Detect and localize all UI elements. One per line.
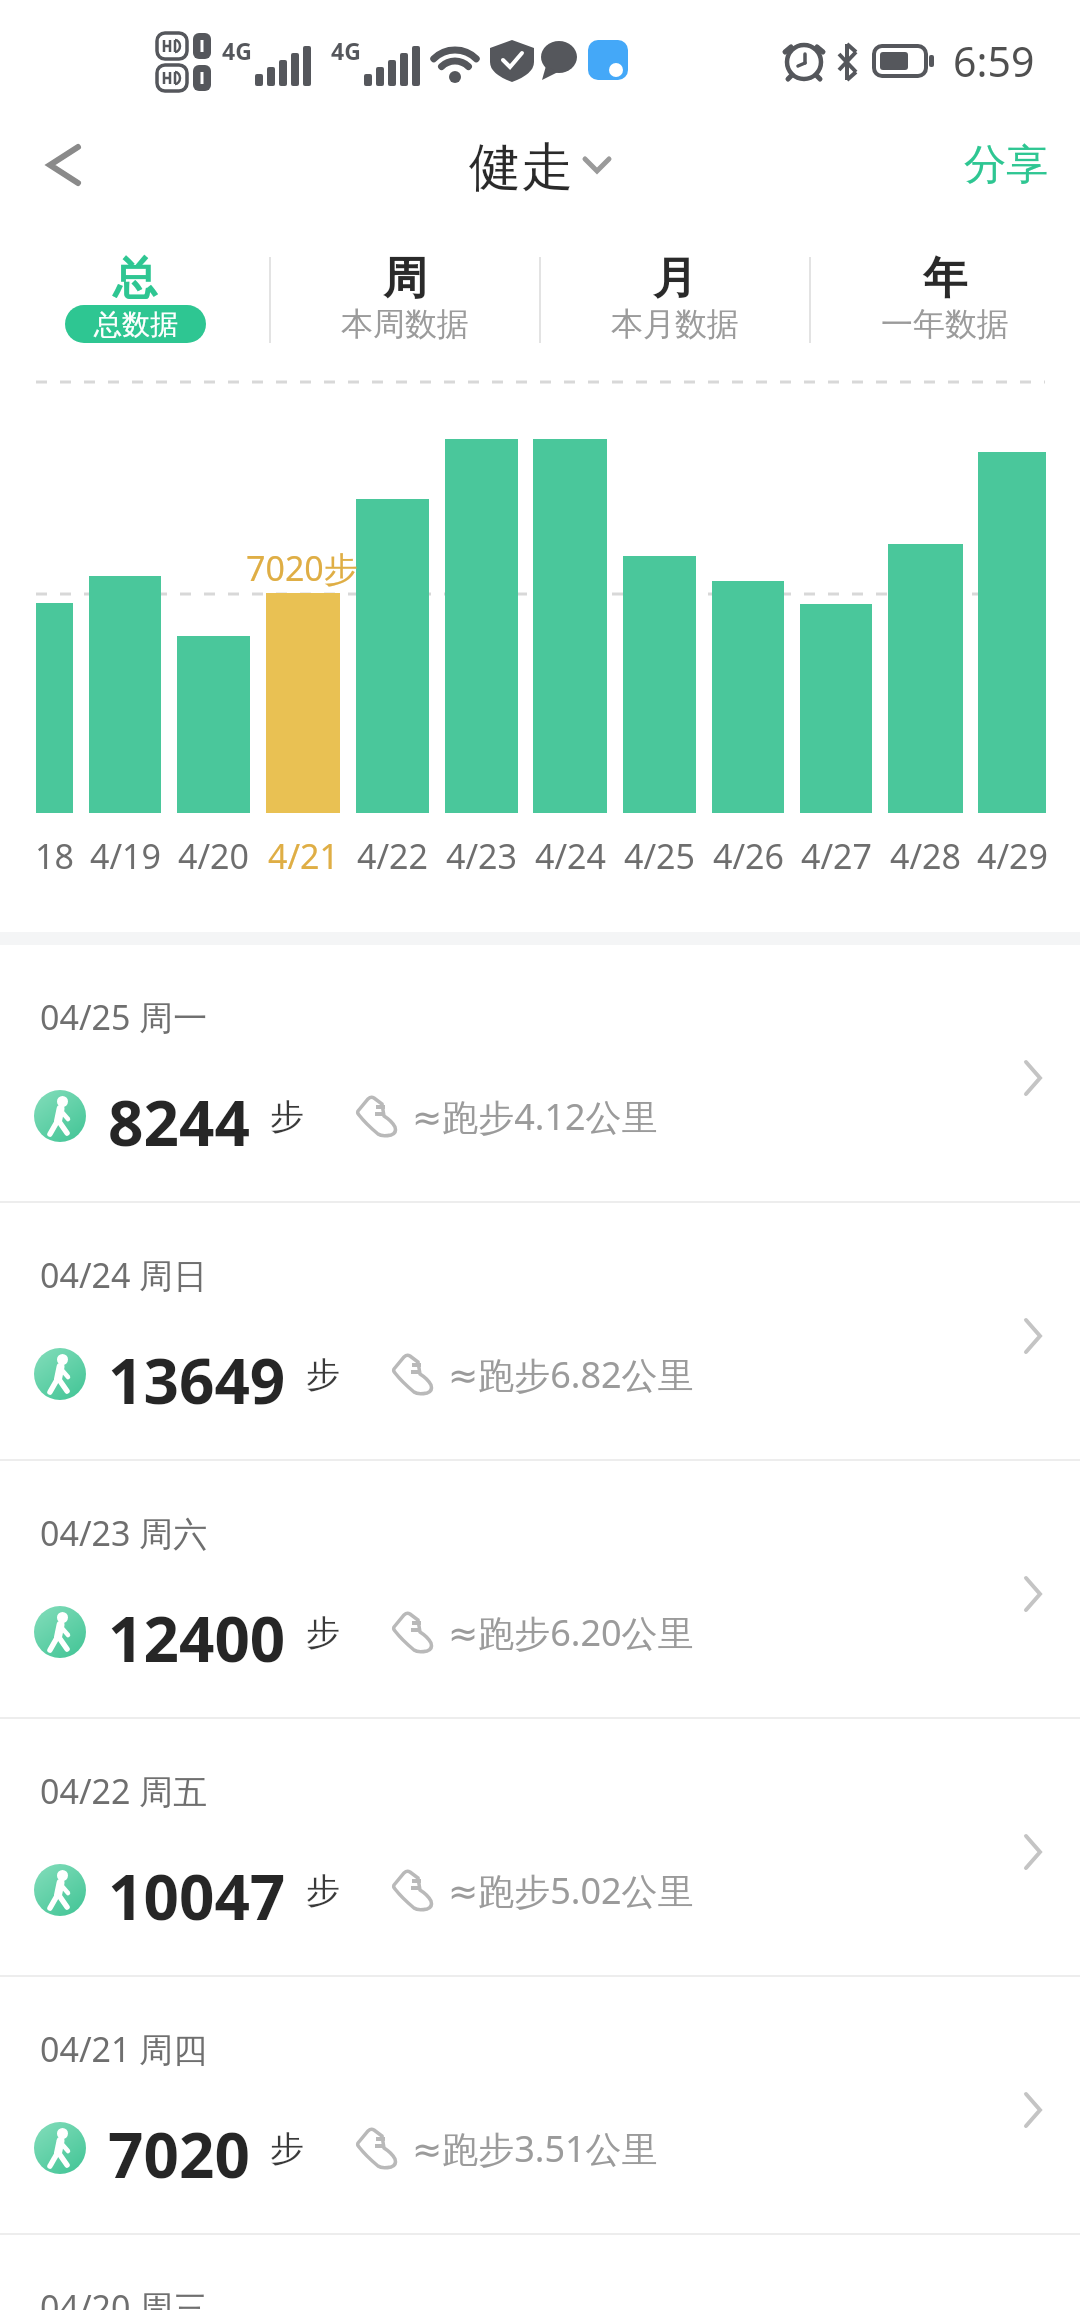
staticText: 04/24 周日 <box>40 1252 208 1298</box>
staticText: 12400 <box>108 1596 286 1668</box>
button[interactable]: 04/20 周三 <box>0 2235 1080 2310</box>
button[interactable] <box>810 240 1080 358</box>
staticText: 4/28 <box>890 833 961 879</box>
staticText: 4/20 <box>178 833 249 879</box>
staticText: 步 <box>270 1095 304 1138</box>
button[interactable] <box>270 240 540 358</box>
button[interactable]: 04/23 周六 <box>0 1461 1080 1719</box>
button[interactable] <box>540 240 810 358</box>
staticText: 04/22 周五 <box>40 1768 208 1814</box>
staticText: ≈跑步4.12公里 <box>412 1092 658 1141</box>
staticText: 13649 <box>108 1338 286 1410</box>
button[interactable]: 04/24 周日 <box>0 1203 1080 1461</box>
staticText: 一年数据 <box>881 304 1009 344</box>
staticText: ≈跑步6.20公里 <box>448 1608 694 1657</box>
staticText: 本周数据 <box>341 304 469 344</box>
staticText: 04/20 周三 <box>40 2284 208 2310</box>
staticText: 7020步 <box>246 545 358 591</box>
staticText: 本月数据 <box>611 304 739 344</box>
staticText: 总数据 <box>94 307 178 342</box>
staticText: 4/26 <box>713 833 784 879</box>
button[interactable]: 分享 <box>940 135 1060 195</box>
staticText: 6:59 <box>953 33 1035 89</box>
staticText: 18 <box>35 833 74 879</box>
staticText: 4/23 <box>446 833 517 879</box>
staticText: 4G <box>222 35 252 66</box>
staticText: ≈跑步3.51公里 <box>412 2124 658 2173</box>
button[interactable]: 04/25 周一 <box>0 945 1080 1203</box>
staticText: ≈跑步6.82公里 <box>448 1350 694 1399</box>
staticText: 4/25 <box>624 833 695 879</box>
staticText: 4G <box>331 35 361 66</box>
staticText: 04/23 周六 <box>40 1510 208 1556</box>
staticText: 4/27 <box>801 833 872 879</box>
staticText: 步 <box>306 1353 340 1396</box>
staticText: 年 <box>923 251 967 306</box>
staticText: 周 <box>383 251 427 306</box>
staticText: ≈跑步5.02公里 <box>448 1866 694 1915</box>
staticText: 10047 <box>108 1854 286 1926</box>
staticText: 总 <box>113 251 157 306</box>
staticText: 步 <box>270 2127 304 2170</box>
staticText: 步 <box>306 1869 340 1912</box>
staticText: 4/21 <box>268 833 339 879</box>
staticText: 04/21 周四 <box>40 2026 208 2072</box>
button[interactable] <box>0 240 270 358</box>
staticText: 4/22 <box>357 833 428 879</box>
button[interactable]: 04/21 周四 <box>0 1977 1080 2235</box>
staticText: 健走 <box>469 135 573 195</box>
button[interactable] <box>30 135 90 195</box>
staticText: 步 <box>306 1611 340 1654</box>
staticText: 4/29 <box>977 833 1048 879</box>
staticText: 4/19 <box>90 833 161 879</box>
button[interactable]: 04/22 周五 <box>0 1719 1080 1977</box>
staticText: 分享 <box>964 139 1048 192</box>
staticText: 7020 <box>108 2112 250 2184</box>
staticText: 4/24 <box>535 833 606 879</box>
staticText: 8244 <box>108 1080 250 1152</box>
staticText: 月 <box>653 251 697 306</box>
button[interactable]: 健走 <box>469 135 611 195</box>
staticText: 04/25 周一 <box>40 994 208 1040</box>
